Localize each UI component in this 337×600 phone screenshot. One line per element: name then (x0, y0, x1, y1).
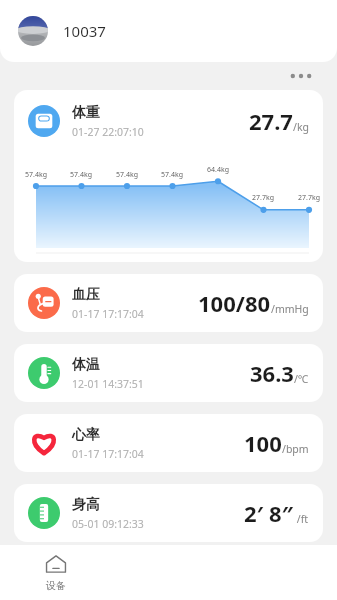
staticText: 体温 (72, 356, 100, 374)
button[interactable]: 体温 (14, 344, 323, 402)
staticText: 心率 (72, 426, 100, 444)
staticText: 血压 (72, 286, 100, 304)
staticText: 10037 (63, 21, 106, 41)
staticText: 2′ 8″ (244, 498, 294, 528)
staticText: 01-17 17:17:04 (72, 447, 144, 461)
staticText: 12-01 14:37:51 (72, 377, 144, 391)
staticText: 27.7 (249, 106, 293, 136)
staticText: 01-17 17:17:04 (72, 307, 144, 321)
staticText: /bpm (282, 442, 309, 456)
button[interactable]: 身高 (14, 484, 323, 542)
button[interactable]: 体重 (14, 90, 323, 262)
staticText: 05-01 09:12:33 (72, 517, 144, 531)
staticText: /ft (294, 512, 309, 526)
staticText: 体重 (72, 104, 100, 122)
staticText: 01-27 22:07:10 (72, 125, 144, 139)
button[interactable]: 血压 (14, 274, 323, 332)
staticText: 100 (244, 428, 282, 458)
button[interactable]: 设备 (0, 545, 112, 600)
staticText: 27.7kg (252, 193, 274, 203)
staticText: 57.4kg (25, 170, 47, 180)
button[interactable]: 心率 (14, 414, 323, 472)
staticText: /mmHg (271, 302, 309, 316)
staticText: 64.4kg (207, 165, 229, 175)
staticText: 100/80 (198, 288, 271, 318)
staticText: 57.4kg (116, 170, 138, 180)
staticText: 设备 (46, 579, 66, 592)
staticText: 57.4kg (70, 170, 92, 180)
staticText: 36.3 (250, 358, 294, 388)
staticText: 57.4kg (161, 170, 183, 180)
button[interactable]: 10037 (0, 0, 337, 62)
staticText: 27.7kg (298, 193, 320, 203)
staticText: /kg (293, 120, 309, 134)
button[interactable]: More options (285, 64, 317, 88)
staticText: /℃ (294, 372, 309, 386)
staticText: 身高 (72, 496, 100, 514)
